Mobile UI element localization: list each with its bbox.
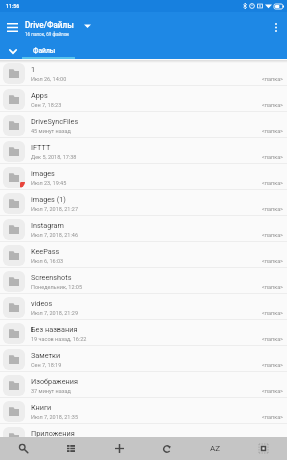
staticText: 19 часов назад, 16:22 (31, 336, 87, 342)
button[interactable]: Apps (0, 86, 287, 112)
staticText: Июл 6, 16:03 (31, 258, 64, 264)
staticText: Июл 7, 2018, 21:35 (31, 414, 78, 420)
button[interactable]: images (1) (0, 190, 287, 216)
staticText: <папка> (262, 258, 283, 264)
staticText: 11:56 (6, 3, 20, 9)
staticText: Июл 26, 14:00 (31, 76, 67, 82)
staticText: videos (31, 299, 53, 308)
staticText: images (31, 169, 55, 178)
staticText: Screenshots (31, 273, 72, 282)
staticText: Дек 5, 2018, 17:38 (31, 154, 77, 160)
button[interactable]: Sort (191, 437, 239, 460)
staticText: 16 папок, 69 файлов (25, 32, 69, 37)
button[interactable]: Книги (0, 398, 287, 424)
staticText: images (1) (31, 195, 66, 204)
staticText: <папка> (262, 336, 283, 342)
staticText: <папка> (262, 232, 283, 238)
button[interactable]: Изображения (0, 372, 287, 398)
staticText: Сен 7, 18:19 (31, 362, 62, 368)
staticText: <папка> (262, 154, 283, 160)
staticText: Приложения (31, 429, 75, 438)
staticText: <папка> (262, 414, 283, 420)
staticText: Drive/Файлы (25, 20, 74, 30)
button[interactable]: KeePass (0, 242, 287, 268)
staticText: Книги (31, 403, 52, 412)
staticText: Файлы (33, 47, 56, 55)
button[interactable]: videos (0, 294, 287, 320)
staticText: DriveSyncFiles (31, 117, 79, 126)
button[interactable]: Collapse path (2, 43, 23, 59)
staticText: Июл 23, 19:45 (31, 180, 67, 186)
staticText: <папка> (262, 362, 283, 368)
staticText: <папка> (262, 128, 283, 134)
button[interactable]: Screenshots (0, 268, 287, 294)
button[interactable]: Refresh (143, 437, 191, 460)
button[interactable]: Select (239, 437, 287, 460)
staticText: Июл 7, 2018, 21:27 (31, 206, 78, 212)
button[interactable]: images (0, 164, 287, 190)
staticText: 1 (31, 65, 36, 74)
button[interactable]: IFTTT (0, 138, 287, 164)
staticText: Заметки (31, 351, 61, 360)
button[interactable]: More options (266, 17, 286, 37)
button[interactable]: Приложения (0, 424, 287, 450)
button[interactable]: Search (0, 437, 47, 460)
staticText: <папка> (262, 206, 283, 212)
staticText: <папка> (262, 388, 283, 394)
button[interactable]: Без названия (0, 320, 287, 346)
button[interactable]: Change location (80, 19, 94, 33)
staticText: KeePass (31, 247, 60, 256)
staticText: Июл 7, 2018, 21:46 (31, 232, 78, 238)
staticText: <папка> (262, 102, 283, 108)
button[interactable]: Заметки (0, 346, 287, 372)
staticText: IFTTT (31, 143, 51, 152)
staticText: Без названия (31, 325, 78, 334)
button[interactable]: 1 (0, 60, 287, 86)
staticText: Instagram (31, 221, 64, 230)
staticText: <папка> (262, 180, 283, 186)
staticText: 37 минут назад (31, 388, 71, 394)
button[interactable]: Instagram (0, 216, 287, 242)
button[interactable]: Add (95, 437, 143, 460)
staticText: <папка> (262, 310, 283, 316)
button[interactable]: DriveSyncFiles (0, 112, 287, 138)
staticText: <папка> (262, 284, 283, 290)
button[interactable]: Файлы (22, 43, 66, 59)
staticText: Понедельник, 12:05 (31, 284, 83, 290)
button[interactable]: View mode (47, 437, 95, 460)
button[interactable]: Open navigation drawer (2, 17, 23, 38)
staticText: 45 минут назад (31, 128, 71, 134)
staticText: <папка> (262, 440, 283, 446)
staticText: Июл 7, 2018, 21:30 (31, 440, 78, 446)
staticText: <папка> (262, 76, 283, 82)
staticText: Apps (31, 91, 48, 100)
staticText: Июл 7, 2018, 21:29 (31, 310, 78, 316)
staticText: Изображения (31, 377, 78, 386)
staticText: Сен 7, 18:23 (31, 102, 62, 108)
staticText: AZ (210, 444, 221, 453)
